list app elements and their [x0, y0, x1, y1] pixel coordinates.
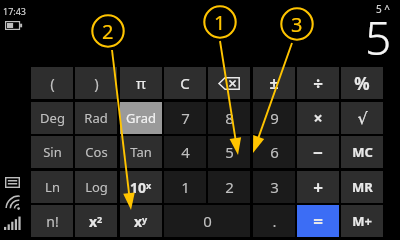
button[interactable]: 6 — [253, 136, 295, 168]
staticText: π — [136, 73, 146, 93]
button[interactable]: 1 — [164, 171, 206, 203]
staticText: 6 — [270, 142, 279, 162]
button[interactable]: % — [341, 67, 383, 99]
staticText: 8 — [225, 108, 234, 128]
staticText: √ — [357, 109, 368, 128]
staticText: Rad — [84, 109, 108, 127]
staticText: % — [354, 72, 370, 95]
staticText: 5 — [365, 6, 392, 67]
staticText: Log — [85, 178, 108, 196]
button[interactable]: M+ — [341, 205, 383, 237]
staticText: ) — [94, 73, 99, 93]
button[interactable]: Tan — [120, 136, 162, 168]
staticText: 2 — [225, 177, 234, 197]
staticText: ( — [50, 73, 55, 93]
button[interactable]: Sin — [31, 136, 73, 168]
staticText: Grad — [126, 109, 156, 127]
button[interactable]: 5 — [208, 136, 250, 168]
staticText: M+ — [352, 212, 372, 230]
button[interactable]: π — [120, 67, 162, 99]
staticText: 1 — [181, 177, 190, 197]
button[interactable]: MR — [341, 171, 383, 203]
button[interactable]: × — [297, 102, 339, 134]
button[interactable]: 7 — [164, 102, 206, 134]
button[interactable]: . — [253, 205, 295, 237]
staticText: − — [313, 141, 323, 164]
staticText: n! — [46, 212, 59, 231]
button[interactable]: ÷ — [297, 67, 339, 99]
staticText: C — [180, 73, 190, 93]
staticText: MC — [352, 143, 373, 161]
button[interactable]: C — [164, 67, 206, 99]
button[interactable]: MC — [341, 136, 383, 168]
staticText: . — [272, 211, 277, 231]
button[interactable]: 9 — [253, 102, 295, 134]
staticText: ÷ — [313, 72, 323, 95]
button[interactable]: Cos — [75, 136, 117, 168]
button[interactable]: xy — [120, 205, 162, 237]
staticText: Ln — [45, 178, 60, 196]
button[interactable]: x2 — [75, 205, 117, 237]
staticText: 10x — [130, 178, 152, 197]
button[interactable]: 10x — [120, 171, 162, 203]
staticText: xy — [134, 212, 148, 231]
button[interactable]: Backspace — [208, 67, 250, 99]
button[interactable]: Deg — [31, 102, 73, 134]
staticText: 7 — [181, 108, 190, 128]
staticText: 5 ^ — [376, 2, 391, 16]
button[interactable]: Grad — [120, 102, 162, 134]
staticText: 0 — [203, 211, 212, 231]
staticText: Deg — [40, 109, 65, 127]
button[interactable]: Ln — [31, 171, 73, 203]
staticText: 4 — [181, 142, 190, 162]
button[interactable]: 0 — [164, 205, 250, 237]
staticText: = — [313, 210, 323, 233]
staticText: 5 — [225, 142, 234, 162]
button[interactable]: Log — [75, 171, 117, 203]
staticText: Tan — [130, 143, 152, 161]
button[interactable]: + — [297, 171, 339, 203]
button[interactable]: Rad — [75, 102, 117, 134]
button[interactable]: n! — [31, 205, 73, 237]
staticText: MR — [352, 178, 373, 196]
staticText: 1 — [214, 9, 226, 36]
staticText: Sin — [43, 143, 62, 161]
button[interactable]: √ — [341, 102, 383, 134]
staticText: ± — [269, 72, 279, 94]
button[interactable]: ) — [75, 67, 117, 99]
button[interactable]: 3 — [253, 171, 295, 203]
button[interactable]: ( — [31, 67, 73, 99]
button[interactable]: 2 — [208, 171, 250, 203]
staticText: 9 — [270, 108, 279, 128]
button[interactable]: 4 — [164, 136, 206, 168]
staticText: x2 — [89, 212, 103, 231]
staticText: Cos — [85, 143, 108, 161]
button[interactable]: − — [297, 136, 339, 168]
button[interactable]: 8 — [208, 102, 250, 134]
button[interactable]: = — [297, 205, 339, 237]
staticText: 17:43 — [3, 5, 27, 17]
staticText: 3 — [270, 177, 279, 197]
button[interactable]: ± — [253, 67, 295, 99]
staticText: × — [313, 107, 323, 129]
staticText: 3 — [291, 11, 303, 38]
staticText: + — [313, 176, 323, 199]
staticText: 2 — [102, 18, 114, 45]
